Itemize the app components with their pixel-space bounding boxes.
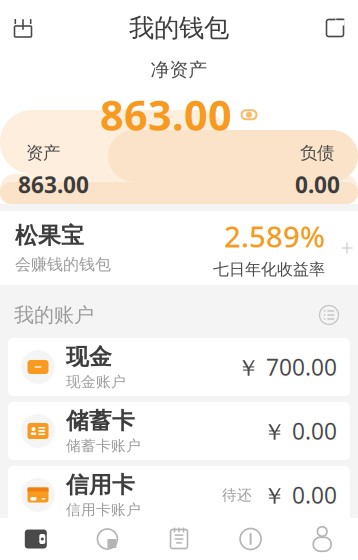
button[interactable]: Compose bbox=[312, 6, 358, 50]
staticText: 松果宝 bbox=[15, 222, 84, 250]
staticText: 信用卡账户 bbox=[66, 501, 141, 519]
button[interactable]: Hide balance bbox=[100, 81, 258, 142]
staticText: 我的钱包 bbox=[129, 12, 229, 43]
staticText: ￥ 0.00 bbox=[263, 480, 337, 510]
staticText: 会赚钱的钱包 bbox=[15, 255, 111, 274]
button[interactable]: Import bbox=[0, 6, 46, 50]
button[interactable]: Me bbox=[286, 518, 358, 560]
staticText: ￥ 700.00 bbox=[237, 352, 337, 382]
staticText: 2.589% bbox=[224, 217, 325, 256]
staticText: 资产 bbox=[26, 142, 60, 163]
staticText: 储蓄卡账户 bbox=[66, 437, 141, 455]
staticText: 负债 bbox=[300, 142, 334, 163]
staticText: 七日年化收益率 bbox=[213, 260, 325, 279]
staticText: 863.00 bbox=[100, 87, 232, 142]
button[interactable]: 现金 bbox=[8, 338, 350, 396]
staticText: 待还 bbox=[222, 486, 252, 504]
staticText: 863.00 bbox=[18, 169, 89, 200]
staticText: 现金 bbox=[66, 343, 112, 371]
button[interactable]: Records bbox=[143, 518, 215, 560]
staticText: 我的账户 bbox=[14, 303, 94, 327]
staticText: 储蓄卡 bbox=[66, 407, 135, 435]
button[interactable]: Wallet bbox=[0, 518, 72, 560]
button[interactable]: 信用卡 bbox=[8, 466, 350, 524]
staticText: 净资产 bbox=[150, 58, 207, 81]
button[interactable]: 松果宝 bbox=[0, 211, 358, 285]
staticText: 信用卡 bbox=[66, 471, 135, 499]
button[interactable]: Charts bbox=[72, 518, 143, 560]
button[interactable]: Sort accounts bbox=[314, 300, 344, 330]
staticText: ￥ 0.00 bbox=[263, 416, 337, 446]
button[interactable]: Discover bbox=[215, 518, 286, 560]
button[interactable]: 储蓄卡 bbox=[8, 402, 350, 460]
staticText: 现金账户 bbox=[66, 373, 126, 391]
staticText: 0.00 bbox=[295, 169, 340, 200]
